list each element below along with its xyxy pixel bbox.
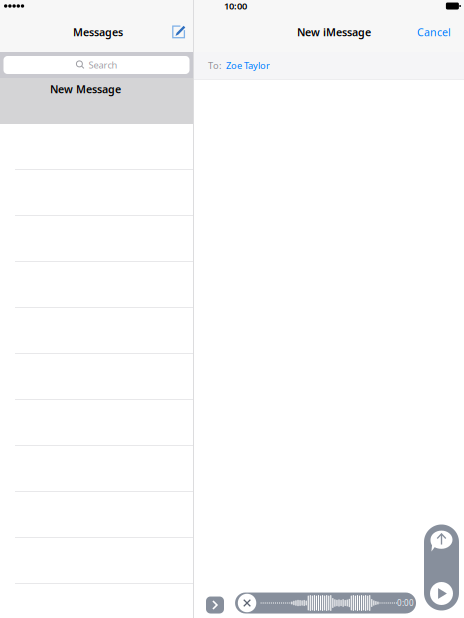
button[interactable] [0, 216, 193, 262]
button[interactable] [0, 124, 193, 170]
staticText: 0:00 [397, 598, 414, 608]
button[interactable]: New Message [0, 78, 193, 124]
button[interactable]: Send [428, 529, 454, 554]
button[interactable]: Discard recording [236, 592, 257, 613]
button[interactable] [0, 308, 193, 354]
staticText: New Message [50, 82, 121, 96]
button[interactable]: Play [428, 580, 454, 606]
button[interactable] [0, 492, 193, 538]
staticText: New iMessage [297, 25, 371, 39]
button[interactable] [0, 446, 193, 492]
staticText: Cancel [417, 25, 451, 39]
button[interactable]: More options [206, 596, 224, 613]
button[interactable] [0, 400, 193, 446]
button[interactable] [0, 538, 193, 584]
button[interactable] [0, 262, 193, 308]
staticText: Messages [73, 25, 123, 39]
button[interactable] [0, 354, 193, 400]
button[interactable] [0, 170, 193, 216]
staticText: Search [88, 59, 117, 71]
button[interactable]: Cancel [412, 20, 456, 44]
button[interactable]: Compose new message [170, 22, 188, 42]
staticText: Zoe Taylor [226, 59, 270, 72]
staticText: To: [208, 59, 222, 72]
staticText: 10:00 [224, 0, 247, 12]
